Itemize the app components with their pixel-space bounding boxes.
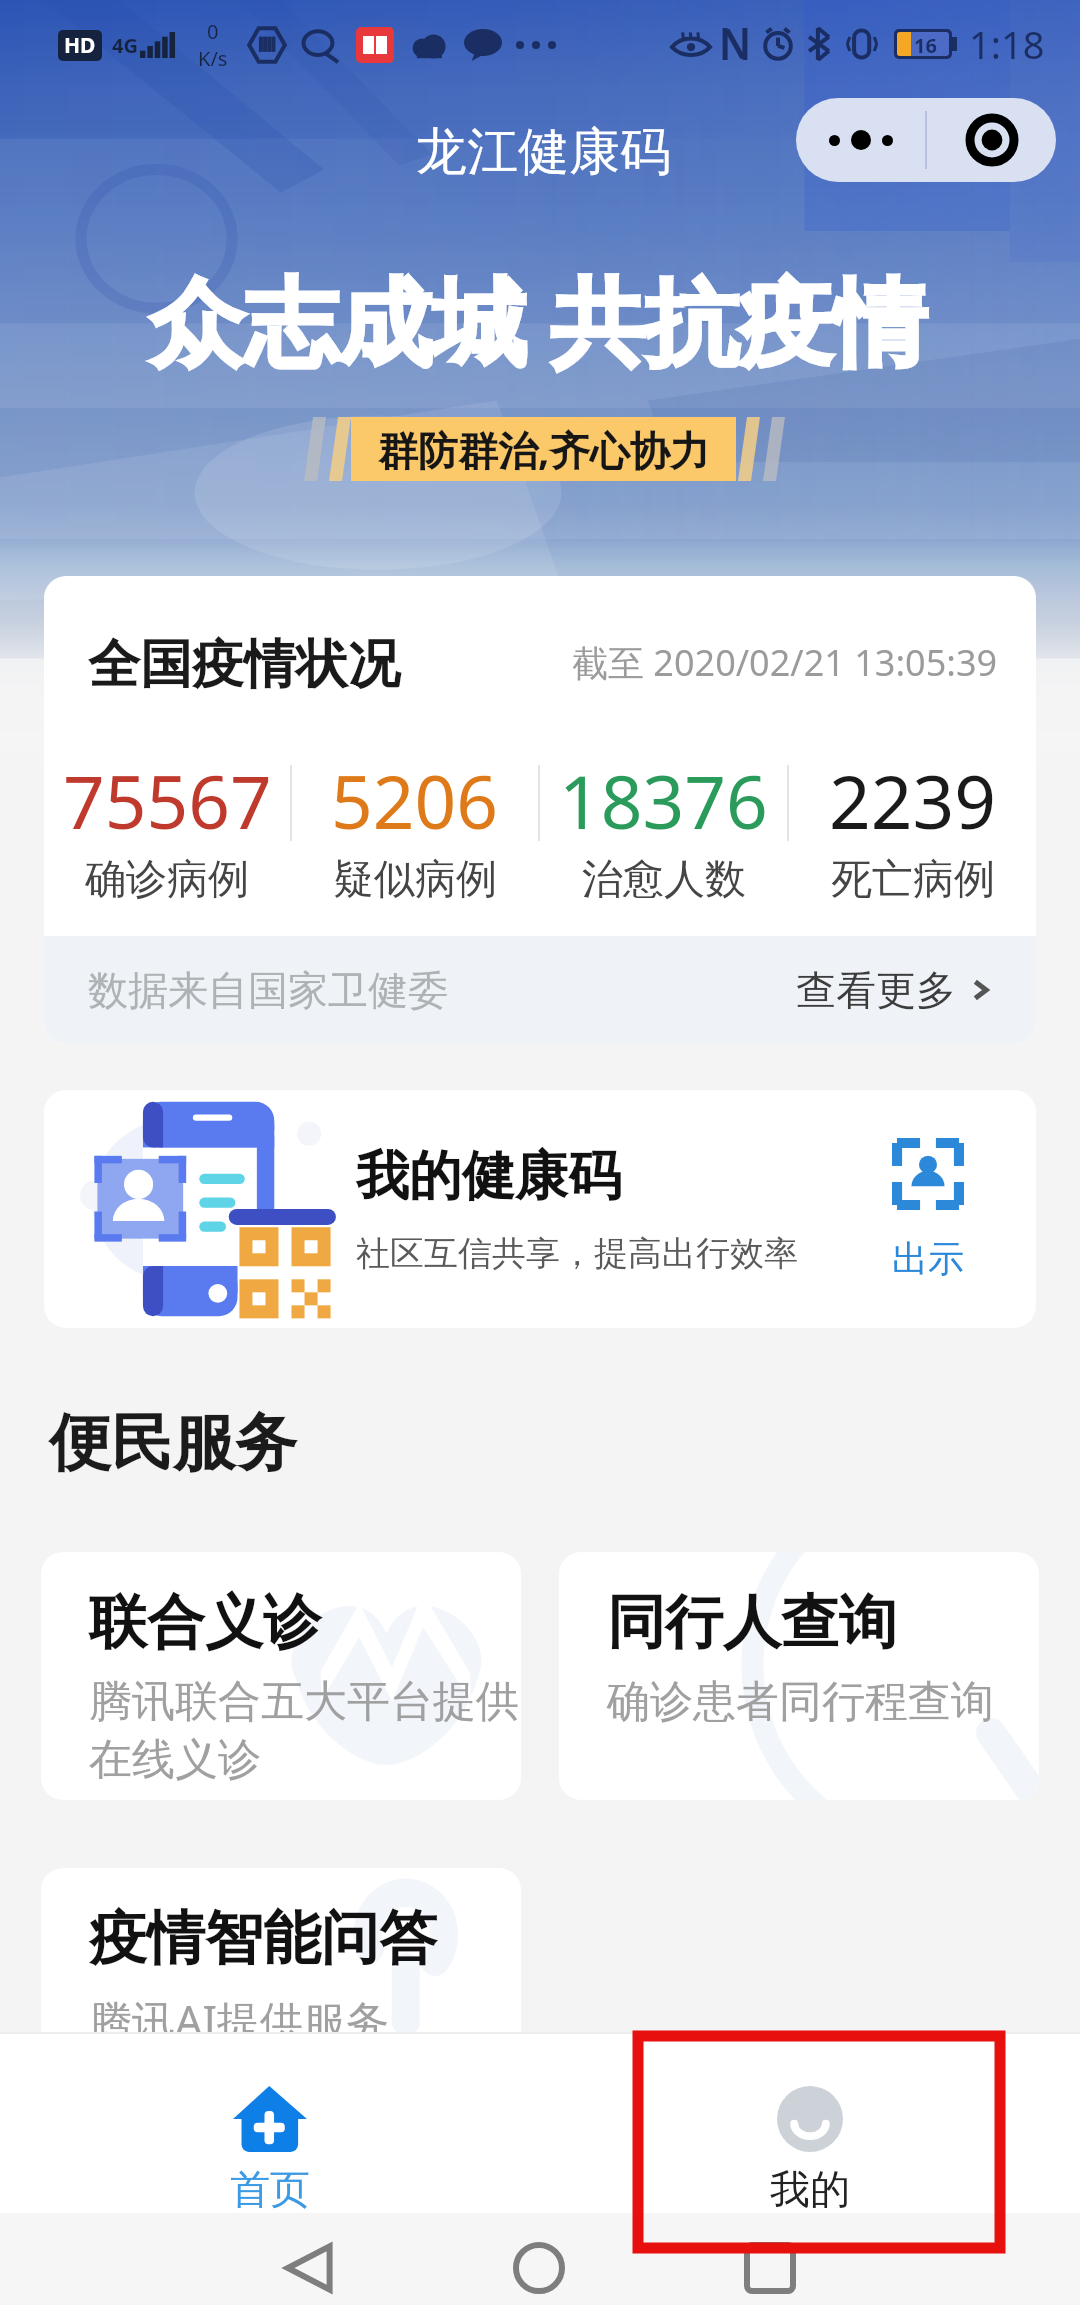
staticText: 数据来自国家卫健委 bbox=[88, 965, 448, 1015]
staticText: 全国疫情状况 bbox=[88, 632, 400, 698]
button[interactable]: 首页 bbox=[0, 2032, 540, 2213]
staticText: 确诊病例 bbox=[85, 854, 249, 906]
staticText: K/s bbox=[198, 45, 228, 72]
staticText: 16 bbox=[914, 32, 937, 56]
staticText: 死亡病例 bbox=[831, 854, 995, 906]
button[interactable]: More options and close bbox=[796, 98, 1056, 182]
staticText: 联合义诊 bbox=[89, 1586, 321, 1659]
staticText: 众志成城 共抗疫情 bbox=[150, 256, 927, 384]
staticText: 首页 bbox=[230, 2164, 310, 2213]
button[interactable]: 我的健康码 bbox=[44, 1090, 1036, 1328]
staticText: 腾讯联合五大平台提供 在线义诊 bbox=[89, 1675, 519, 1786]
staticText: HD bbox=[64, 31, 96, 60]
button[interactable]: Home bbox=[468, 2213, 610, 2305]
staticText: 龙江健康码 bbox=[416, 120, 671, 184]
staticText: 查看更多 bbox=[796, 965, 956, 1015]
staticText: 我的 bbox=[770, 2164, 850, 2213]
staticText: 2239 bbox=[829, 751, 997, 850]
staticText: 同行人查询 bbox=[607, 1586, 897, 1659]
staticText: 治愈人数 bbox=[582, 854, 746, 906]
staticText: 疫情智能问答 bbox=[89, 1902, 437, 1975]
staticText: 4G bbox=[112, 32, 138, 59]
staticText: 5206 bbox=[331, 751, 499, 850]
staticText: 疑似病例 bbox=[333, 854, 497, 906]
staticText: 我的健康码 bbox=[356, 1143, 621, 1210]
button[interactable]: 数据来自国家卫健委 bbox=[44, 936, 1036, 1044]
staticText: 0 bbox=[207, 18, 219, 45]
staticText: 1:18 bbox=[969, 18, 1045, 70]
staticText: 便民服务 bbox=[49, 1404, 297, 1482]
button[interactable]: Recent apps bbox=[699, 2213, 841, 2305]
staticText: 群防群治,齐心协力 bbox=[378, 422, 710, 477]
button[interactable]: Back bbox=[237, 2213, 379, 2305]
staticText: 截至 2020/02/21 13:05:39 bbox=[572, 638, 998, 687]
button[interactable]: 疫情智能问答 bbox=[41, 1868, 521, 2116]
staticText: 18376 bbox=[559, 751, 768, 850]
staticText: 出示 bbox=[892, 1236, 964, 1281]
staticText: 75567 bbox=[63, 751, 272, 850]
staticText: 确诊患者同行程查询 bbox=[607, 1675, 994, 1729]
button[interactable]: 同行人查询 bbox=[559, 1552, 1039, 1800]
button[interactable]: 联合义诊 bbox=[41, 1552, 521, 1800]
button[interactable]: 我的 bbox=[540, 2032, 1080, 2213]
staticText: 社区互信共享，提高出行效率 bbox=[356, 1232, 798, 1275]
staticText: 腾讯AI提供服务 bbox=[89, 1991, 390, 2050]
